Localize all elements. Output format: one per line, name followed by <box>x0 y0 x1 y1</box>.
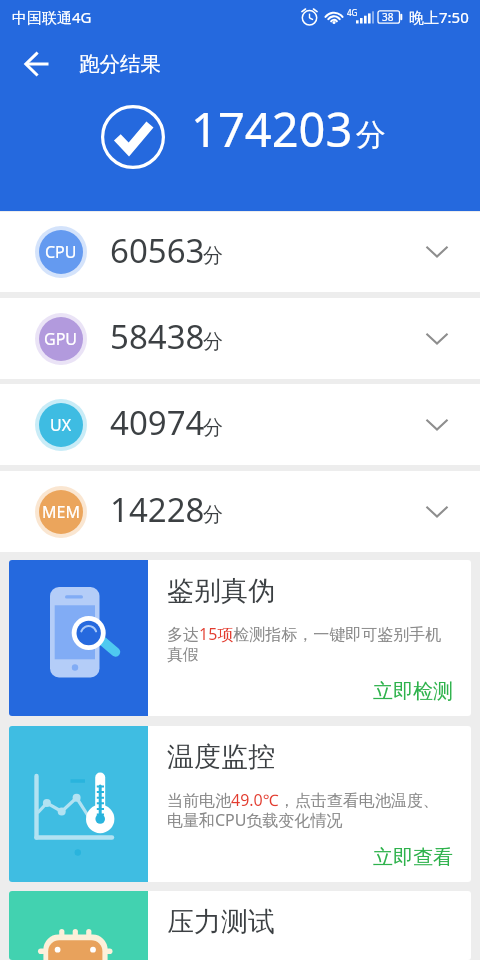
button[interactable]: 展开 <box>415 403 459 447</box>
button[interactable]: UX <box>0 384 480 465</box>
button[interactable]: 鉴别真伪 <box>9 560 471 716</box>
button[interactable]: 压力测试 <box>9 891 471 960</box>
staticText: 38 <box>382 10 394 24</box>
staticText: 分 <box>203 329 223 354</box>
staticText: 压力测试 <box>167 905 275 939</box>
staticText: 立即查看 <box>373 845 453 870</box>
button[interactable]: 展开 <box>415 230 459 274</box>
button[interactable]: 展开 <box>415 490 459 534</box>
staticText: 当前电池49.0℃，点击查看电池温度、电量和CPU负载变化情况 <box>167 789 445 831</box>
staticText: 温度监控 <box>167 740 275 774</box>
staticText: 多达15项检测指标，一键即可鉴别手机真假 <box>167 623 445 664</box>
staticText: 跑分结果 <box>79 51 161 77</box>
staticText: CPU <box>45 241 77 263</box>
staticText: 立即检测 <box>373 679 453 704</box>
staticText: 174203 <box>191 97 353 161</box>
staticText: 40974 <box>110 400 205 445</box>
staticText: 58438 <box>110 314 205 359</box>
staticText: 鉴别真伪 <box>167 574 275 608</box>
staticText: MEM <box>42 501 80 523</box>
staticText: 中国联通4G <box>12 7 92 27</box>
button[interactable]: MEM <box>0 471 480 552</box>
staticText: 分 <box>203 415 223 440</box>
staticText: GPU <box>44 328 78 350</box>
button[interactable]: 展开 <box>415 317 459 361</box>
button[interactable]: 返回 <box>13 40 61 88</box>
staticText: 14228 <box>110 487 205 532</box>
button[interactable]: CPU <box>0 212 480 292</box>
staticText: UX <box>50 414 72 436</box>
staticText: 60563 <box>110 228 205 273</box>
staticText: 分 <box>203 502 223 527</box>
staticText: 晚上7:50 <box>409 7 469 27</box>
button[interactable]: 温度监控 <box>9 726 471 882</box>
staticText: 4G <box>347 7 358 18</box>
button[interactable]: GPU <box>0 298 480 379</box>
staticText: 分 <box>203 243 223 268</box>
staticText: 分 <box>356 116 386 154</box>
